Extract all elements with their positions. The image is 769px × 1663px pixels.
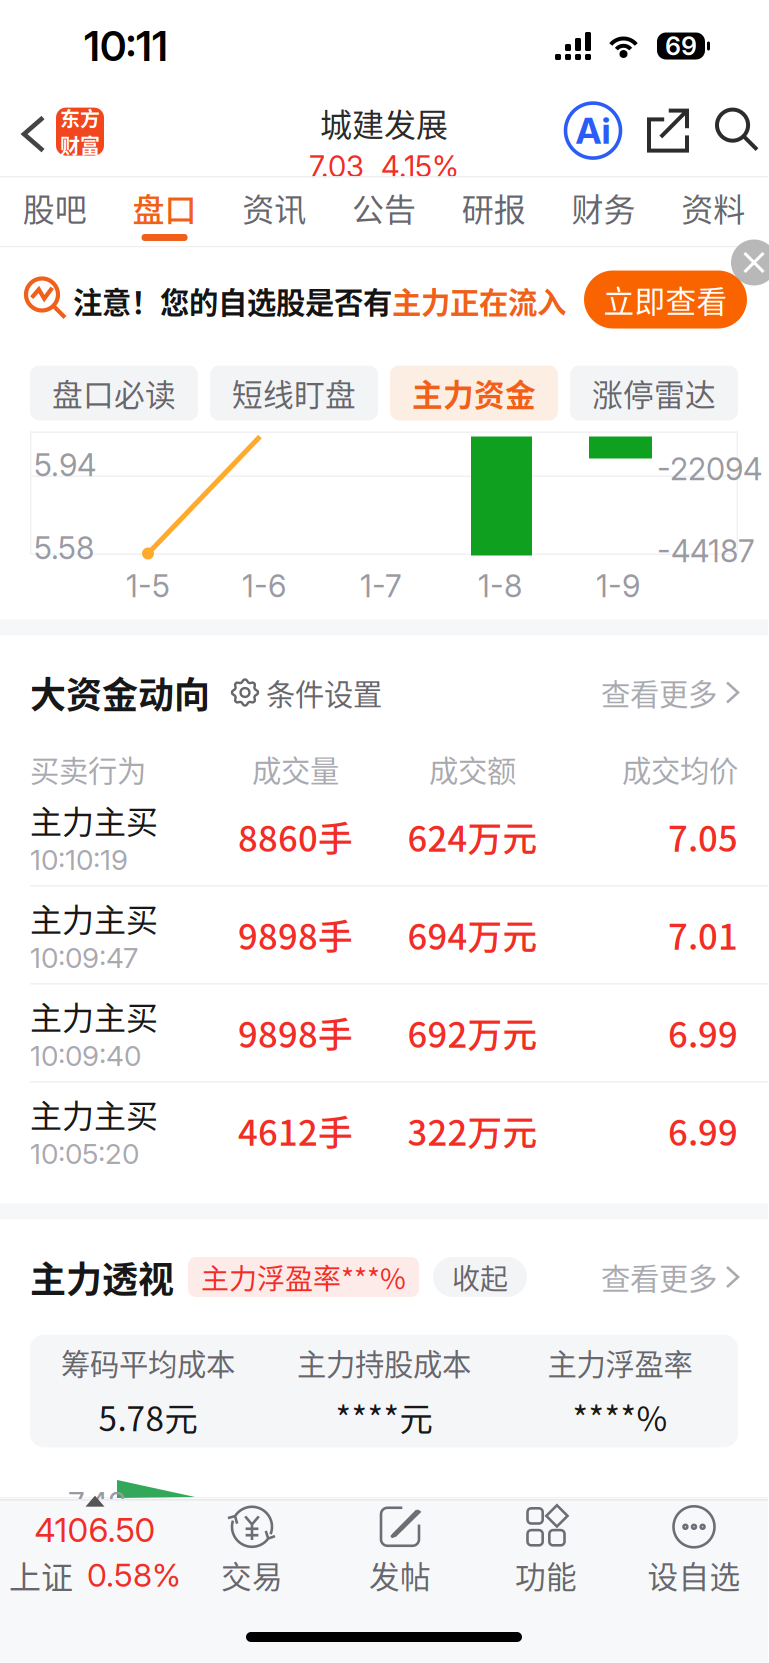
staticText: 主力浮盈率 [547,1341,692,1384]
button[interactable]: 盘口 [110,181,219,246]
staticText: 4.15% [381,149,459,184]
staticText: 主力持股成本 [297,1341,471,1384]
staticText: 盘口 [133,184,197,231]
staticText: 城建发展 [320,100,448,146]
staticText: 条件设置 [266,671,382,714]
staticText: 主力主买 [30,993,158,1039]
button[interactable]: 搜索 [704,97,769,163]
button[interactable]: 主力主买 [0,984,768,1082]
staticText: 成交量 [252,748,339,790]
button[interactable]: 分享 [637,99,699,163]
staticText: 1-8 [478,567,522,605]
staticText: 发帖 [369,1553,431,1597]
button[interactable]: AI 助手 [560,98,626,164]
staticText: 6.99 [668,1008,738,1058]
staticText: 资料 [681,184,745,231]
staticText: 主力正在流入 [392,279,566,322]
staticText: 大资金动向 [30,666,210,718]
staticText: 交易 [221,1553,283,1597]
button[interactable]: 发帖 [326,1500,474,1594]
button[interactable]: 返回 [12,106,55,163]
staticText: 4612手 [238,1106,353,1156]
button[interactable]: 条件设置 [210,664,382,720]
staticText: ****% [572,1393,667,1441]
staticText: 7.01 [668,910,738,960]
staticText: -44187 [657,532,755,570]
staticText: 研报 [462,184,526,231]
staticText: 1-6 [242,567,286,605]
staticText: 10:11 [84,21,168,71]
button[interactable]: 关闭 [731,239,769,285]
button[interactable]: 4106.50 [0,1500,190,1594]
staticText: 4106.50 [34,1510,155,1550]
staticText: 7.03 [309,149,364,184]
staticText: 主力透视 [30,1251,174,1303]
staticText: Ai [575,109,610,152]
staticText: 主力主买 [30,797,158,843]
staticText: 322万元 [407,1106,537,1156]
staticText: 收起 [452,1257,508,1297]
staticText: 主力资金 [412,371,536,415]
button[interactable]: 立即查看 [584,270,747,328]
staticText: 上证 [9,1552,73,1598]
button[interactable]: 短线盯盘 [210,365,378,420]
staticText: 69 [665,31,697,61]
button[interactable]: 涨停雷达 [570,365,738,420]
staticText: 功能 [515,1553,577,1597]
button[interactable]: 东方财富 [56,108,104,156]
staticText: 10:10:19 [30,843,128,877]
button[interactable]: 主力资金 [390,365,558,420]
staticText: 1-5 [126,567,170,605]
button[interactable]: 查看更多 [601,664,738,720]
staticText: 短线盯盘 [232,371,356,415]
staticText: 筹码平均成本 [61,1341,235,1384]
staticText: 查看更多 [601,671,717,714]
button[interactable]: 查看更多 [601,1249,738,1305]
button[interactable]: 功能 [472,1500,620,1594]
staticText: 股吧 [23,184,87,231]
staticText: 6.99 [668,1106,738,1156]
staticText: 成交额 [429,748,516,790]
button[interactable]: 盘口必读 [30,365,198,420]
button[interactable]: 公告 [329,181,439,246]
button[interactable]: 财务 [549,181,658,246]
button[interactable]: 研报 [439,181,549,246]
staticText: 694万元 [407,910,537,960]
button[interactable]: 主力主买 [0,1082,768,1179]
staticText: 8860手 [238,812,353,862]
staticText: 主力主买 [30,895,158,941]
button[interactable]: 资料 [658,181,768,246]
staticText: 7.42 [68,1485,126,1522]
staticText: 成交均价 [622,748,738,790]
staticText: 盘口必读 [52,371,176,415]
staticText: -22094 [657,450,762,488]
button[interactable]: 收起 [419,1257,527,1297]
staticText: 5.94 [34,446,96,484]
button[interactable]: 交易 [178,1500,326,1594]
button[interactable]: 主力主买 [0,886,768,984]
staticText: 公告 [352,184,416,231]
staticText: 5.58 [34,529,94,567]
staticText: ****元 [335,1393,432,1441]
staticText: 涨停雷达 [592,371,716,415]
staticText: 1-9 [596,567,640,605]
staticText: 财富 [60,131,100,160]
staticText: 立即查看 [603,277,727,322]
staticText: 10:09:47 [30,941,138,975]
button[interactable]: 资讯 [219,181,329,246]
staticText: 资讯 [242,184,306,231]
staticText: 7.05 [668,812,738,862]
staticText: 买卖行为 [30,748,146,790]
button[interactable]: 设自选 [620,1500,768,1594]
staticText: 9898手 [238,1008,353,1058]
staticText: 注意！ [73,279,160,322]
staticText: 您的自选股是否有 [160,279,392,322]
button[interactable]: 主力主买 [0,788,768,886]
button[interactable]: 股吧 [0,181,110,246]
staticText: 624万元 [407,812,537,862]
staticText: 主力主买 [30,1091,158,1137]
staticText: 主力浮盈率***% [201,1257,406,1297]
staticText: 5.78元 [98,1393,197,1441]
staticText: 10:09:40 [30,1039,141,1073]
staticText: 设自选 [647,1553,740,1597]
